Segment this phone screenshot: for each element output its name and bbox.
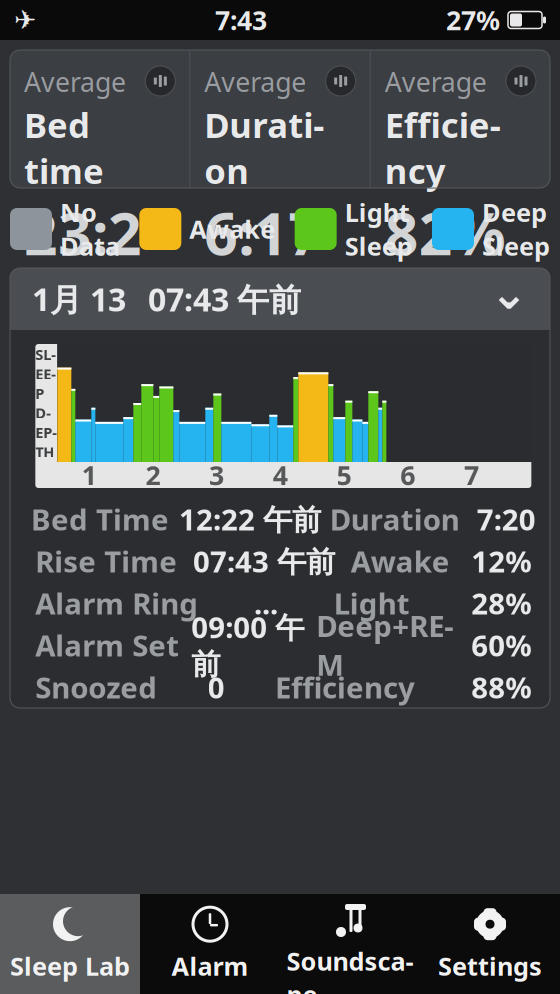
staticText: Sleep (345, 229, 413, 263)
staticText: 27% (446, 2, 500, 38)
staticText: 1月 13 (32, 278, 126, 320)
staticText: No (60, 195, 97, 229)
staticText: 6:17 (204, 193, 322, 271)
button[interactable]: Average (10, 50, 189, 188)
staticText: Duration (204, 101, 324, 193)
staticText: Duration (330, 499, 460, 538)
staticText: Bed time (24, 101, 104, 193)
staticText: Deep+REM (316, 606, 453, 684)
staticText: Average (204, 64, 306, 99)
staticText: Sleep Lab (10, 949, 130, 983)
staticText: 7:20 (477, 499, 536, 538)
staticText: Data (60, 229, 120, 263)
staticText: 23:27 (24, 193, 142, 349)
staticText: 2 (145, 457, 160, 493)
staticText: 7:43 (215, 2, 267, 38)
staticText: Rise Time (35, 541, 177, 580)
staticText: 28% (471, 583, 531, 622)
staticText: Light (345, 195, 410, 229)
staticText: 5 (336, 457, 351, 493)
staticText: 07:43 午前 (148, 278, 301, 320)
button[interactable]: Alarm (140, 894, 280, 994)
staticText: Average (385, 64, 487, 99)
staticText: 7 (464, 457, 479, 493)
staticText: 1 (82, 457, 97, 493)
staticText: Alarm (171, 949, 248, 983)
staticText: ⌄ (490, 267, 528, 319)
button[interactable]: Settings (420, 894, 560, 994)
button[interactable]: Average (371, 50, 550, 188)
staticText: 09:00 午前 (191, 607, 304, 682)
staticText: Alarm Ring (35, 583, 198, 622)
staticText: ... (254, 583, 278, 622)
button[interactable]: Soundscape (280, 894, 420, 994)
staticText: 4 (273, 457, 288, 493)
staticText: 6 (400, 457, 415, 493)
staticText: Snoozed (35, 667, 157, 706)
staticText: Bed Time (31, 499, 169, 538)
staticText: Alarm Set (35, 625, 179, 664)
staticText: 3 (209, 457, 224, 493)
staticText: 0 (208, 667, 225, 706)
button[interactable]: Average (190, 50, 370, 188)
staticText: 88% (471, 667, 531, 706)
staticText: 12% (471, 541, 531, 580)
button[interactable]: 1月 13 (10, 268, 550, 330)
button[interactable]: Sleep Lab (0, 894, 140, 994)
staticText: 60% (471, 625, 531, 664)
staticText: Efficiency (275, 667, 415, 706)
staticText: Awake (189, 212, 275, 246)
staticText: Light (334, 583, 410, 622)
staticText: Deep (482, 195, 547, 229)
staticText: 07:43 午前 (193, 541, 335, 580)
staticText: Sleep (482, 229, 550, 263)
staticText: Soundscape (286, 944, 413, 994)
staticText: Efficiency (385, 101, 501, 193)
staticText: ✈ (14, 5, 36, 35)
staticText: SLEEP DEPTH (35, 345, 57, 461)
staticText: Settings (438, 949, 542, 983)
staticText: Awake (351, 541, 450, 580)
staticText: 82% (385, 193, 506, 271)
staticText: Average (24, 64, 126, 99)
staticText: 12:22 午前 (179, 499, 321, 538)
